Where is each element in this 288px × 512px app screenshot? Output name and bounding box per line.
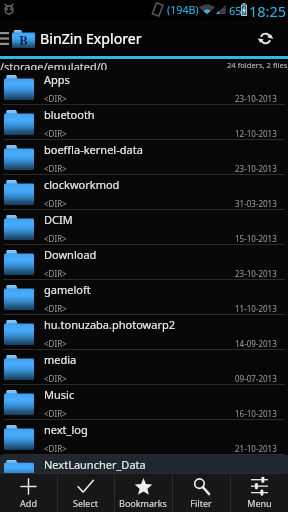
staticText: 15-10-2013 [235, 233, 277, 244]
button[interactable]: Download [0, 245, 288, 280]
button[interactable]: Bookmarks [114, 474, 172, 512]
staticText: 16-10-2013 [235, 408, 277, 419]
button[interactable]: Add [0, 474, 57, 512]
staticText: <DIR> [44, 198, 67, 209]
button[interactable]: Filter [172, 474, 230, 512]
staticText: 23-10-2013 [235, 163, 277, 174]
staticText: 23-10-2013 [235, 268, 277, 279]
staticText: <DIR> [44, 268, 67, 279]
button[interactable]: Select [57, 474, 114, 512]
button[interactable]: Music [0, 385, 288, 420]
staticText: Add [20, 497, 37, 509]
staticText: gameloft [44, 282, 91, 297]
staticText: <DIR> [44, 373, 67, 384]
staticText: hu.tonuzaba.photowarp2 [44, 317, 176, 332]
button[interactable]: Refresh [252, 20, 288, 56]
staticText: clockworkmod [44, 177, 120, 192]
button[interactable]: hu.tonuzaba.photowarp2 [0, 315, 288, 350]
staticText: media [44, 352, 77, 367]
staticText: Bookmarks [119, 497, 167, 509]
staticText: next_log [44, 422, 88, 437]
staticText: Filter [190, 497, 212, 509]
staticText: 31-03-2013 [235, 198, 277, 209]
staticText: NextLauncher_Data [44, 457, 146, 472]
button[interactable]: bluetooth [0, 105, 288, 140]
staticText: 14-09-2013 [235, 338, 277, 349]
staticText: Select [73, 497, 98, 509]
button[interactable]: boeffla-kernel-data [0, 140, 288, 175]
staticText: <DIR> [44, 128, 67, 139]
button[interactable]: gameloft [0, 280, 288, 315]
staticText: 09-07-2013 [235, 373, 277, 384]
button[interactable]: next_log [0, 420, 288, 455]
staticText: bluetooth [44, 107, 95, 122]
button[interactable]: BinZin Explorer home [0, 29, 142, 48]
staticText: /storage/emulated/0 [0, 59, 108, 70]
staticText: 21-10-2013 [235, 443, 277, 454]
staticText: 24 folders, 2 files [227, 60, 288, 70]
staticText: <DIR> [44, 338, 67, 349]
button[interactable]: clockworkmod [0, 175, 288, 210]
staticText: 23-10-2013 [235, 93, 277, 104]
staticText: Download [44, 247, 97, 262]
button[interactable]: Menu [230, 474, 288, 512]
staticText: Apps [44, 72, 70, 87]
button[interactable]: Apps [0, 70, 288, 105]
staticText: <DIR> [44, 443, 67, 454]
staticText: Menu [247, 497, 272, 509]
staticText: <DIR> [44, 163, 67, 174]
staticText: Music [44, 387, 75, 402]
staticText: 65 [229, 3, 242, 18]
staticText: <DIR> [44, 478, 67, 489]
staticText: B [19, 31, 28, 49]
staticText: 12-10-2013 [235, 128, 277, 139]
staticText: BinZin Explorer [40, 29, 142, 48]
staticText: 11-10-2013 [235, 303, 277, 314]
button[interactable]: media [0, 350, 288, 385]
staticText: (194B) [167, 3, 199, 18]
staticText: boeffla-kernel-data [44, 142, 143, 157]
staticText: DCIM [44, 212, 73, 227]
button[interactable]: NextLauncher_Data [0, 455, 288, 474]
button[interactable]: DCIM [0, 210, 288, 245]
staticText: <DIR> [44, 408, 67, 419]
staticText: 18:25 [249, 1, 287, 21]
staticText: <DIR> [44, 93, 67, 104]
staticText: <DIR> [44, 303, 67, 314]
staticText: <DIR> [44, 233, 67, 244]
